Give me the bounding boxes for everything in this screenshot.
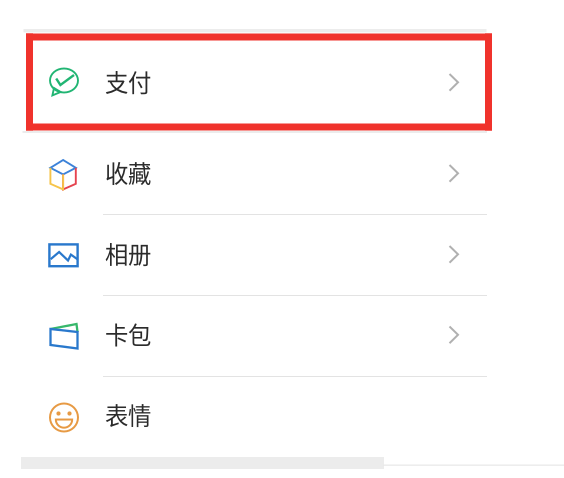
button[interactable]: 收藏	[0, 133, 564, 213]
button[interactable]: 相册	[0, 214, 564, 294]
staticText: 卡包	[105, 317, 151, 351]
staticText: 相册	[105, 236, 151, 270]
button[interactable]: 表情	[0, 375, 564, 455]
staticText: 表情	[105, 397, 151, 431]
button[interactable]: 支付	[0, 42, 564, 122]
staticText: 支付	[105, 64, 151, 98]
staticText: 收藏	[105, 155, 151, 189]
button[interactable]: 卡包	[0, 294, 564, 375]
